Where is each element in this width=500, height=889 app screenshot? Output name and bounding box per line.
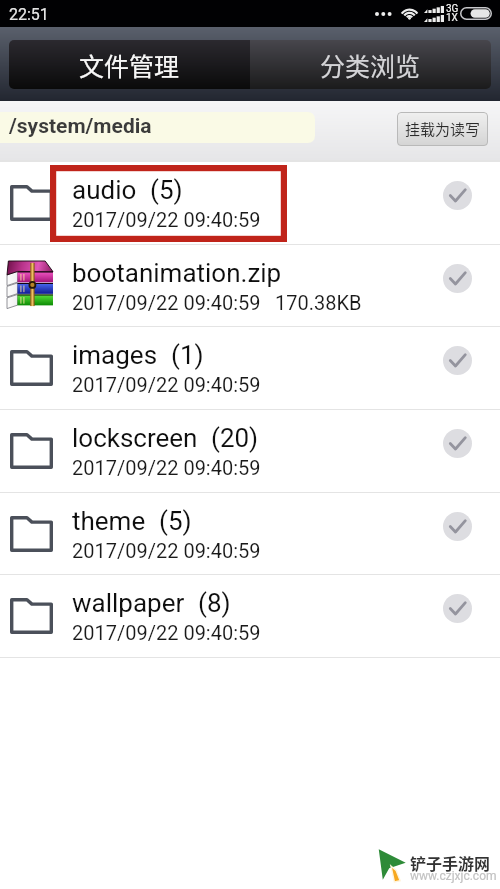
- button[interactable]: 挂载为读写: [397, 112, 488, 146]
- staticText: (1): [171, 340, 204, 370]
- staticText: audio: [72, 175, 137, 205]
- staticText: 22:51: [9, 5, 49, 24]
- staticText: bootanimation.zip: [72, 258, 282, 288]
- staticText: 2017/09/22 09:40:59: [72, 621, 261, 644]
- staticText: (8): [198, 588, 231, 618]
- staticText: 170.38KB: [275, 291, 362, 314]
- button[interactable]: theme: [0, 493, 500, 575]
- staticText: 2017/09/22 09:40:59: [72, 539, 261, 562]
- staticText: 2017/09/22 09:40:59: [72, 208, 261, 231]
- staticText: /system/media: [9, 114, 152, 139]
- staticText: 分类浏览: [320, 47, 421, 83]
- button[interactable]: Select item: [428, 256, 486, 300]
- button[interactable]: Select item: [428, 338, 486, 382]
- button[interactable]: bootanimation.zip: [0, 245, 500, 327]
- button[interactable]: audio: [0, 162, 500, 245]
- staticText: images: [72, 340, 158, 370]
- staticText: wallpaper: [72, 588, 185, 618]
- staticText: 2017/09/22 09:40:59: [72, 456, 261, 479]
- staticText: (20): [211, 423, 259, 453]
- button[interactable]: Select item: [428, 421, 486, 465]
- button[interactable]: images: [0, 327, 500, 410]
- staticText: theme: [72, 506, 146, 536]
- staticText: lockscreen: [72, 423, 198, 453]
- button[interactable]: wallpaper: [0, 575, 500, 658]
- staticText: 2017/09/22 09:40:59: [72, 291, 261, 314]
- staticText: (5): [159, 506, 192, 536]
- staticText: 2017/09/22 09:40:59: [72, 373, 261, 396]
- staticText: (5): [150, 175, 183, 205]
- staticText: 3G: [446, 3, 459, 15]
- button[interactable]: 文件管理: [9, 40, 250, 89]
- button[interactable]: lockscreen: [0, 410, 500, 493]
- button[interactable]: 分类浏览: [250, 40, 491, 89]
- button[interactable]: Select item: [428, 173, 486, 217]
- staticText: 1X: [446, 12, 458, 24]
- button[interactable]: Select item: [428, 504, 486, 548]
- staticText: 文件管理: [79, 47, 180, 83]
- staticText: 铲子手游网: [410, 851, 491, 874]
- staticText: 挂载为读写: [405, 118, 481, 140]
- staticText: www.czjxjc.com: [410, 869, 497, 883]
- button[interactable]: /system/media: [0, 112, 315, 143]
- button[interactable]: Select item: [428, 586, 486, 630]
